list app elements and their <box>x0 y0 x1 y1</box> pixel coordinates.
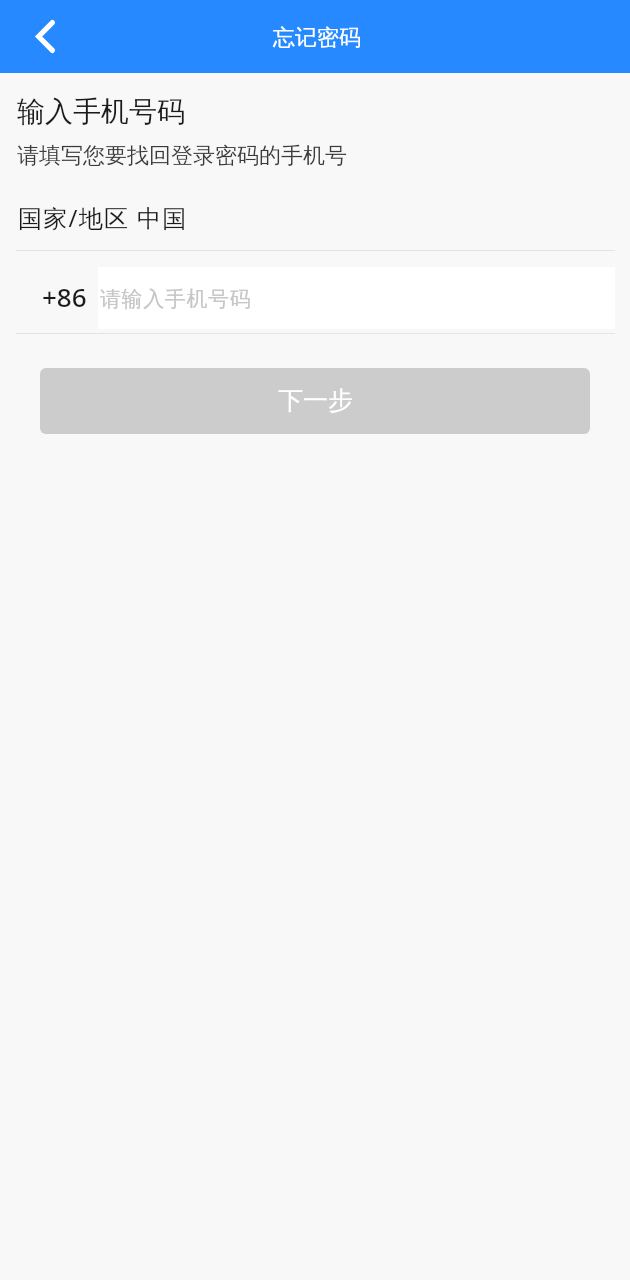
button[interactable]: 国家/地区 中国 <box>0 201 630 234</box>
staticText: 下一步 <box>278 385 353 416</box>
staticText: +86 <box>42 279 87 314</box>
staticText: 请输入手机号码 <box>100 286 252 312</box>
staticText: 输入手机号码 <box>17 94 185 129</box>
button[interactable]: 下一步 <box>40 368 590 434</box>
button[interactable]: Back <box>0 0 90 73</box>
button[interactable]: 请输入手机号码 <box>98 267 615 329</box>
staticText: 忘记密码 <box>273 24 361 52</box>
staticText: 国家/地区 中国 <box>18 201 188 234</box>
staticText: 请填写您要找回登录密码的手机号 <box>17 142 347 170</box>
